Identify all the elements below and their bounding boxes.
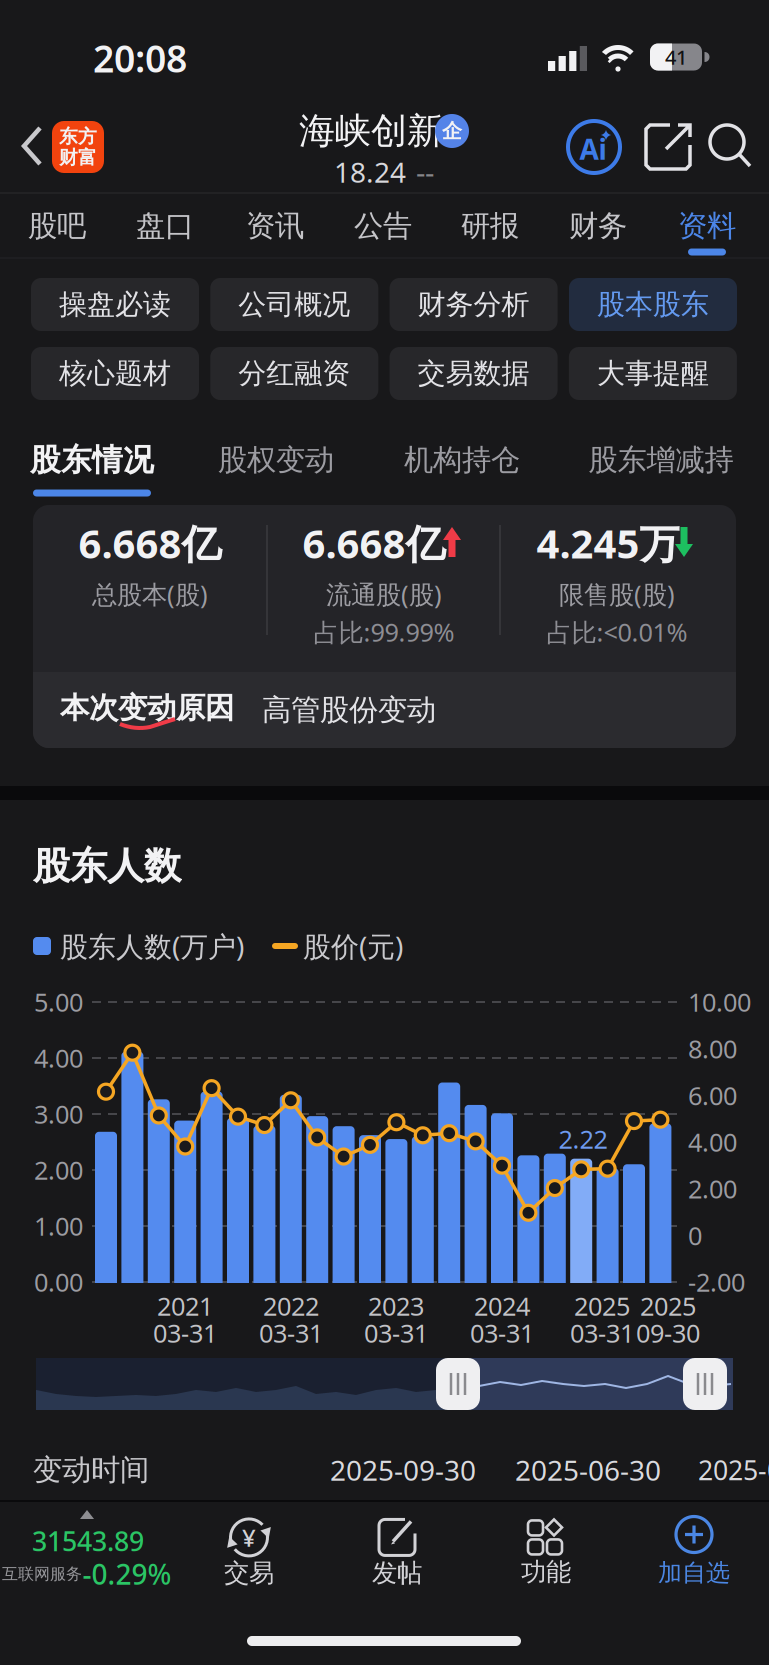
button[interactable]: Ai [568, 121, 620, 173]
staticText: 18.24 [334, 153, 406, 191]
staticText: 核心题材 [59, 356, 171, 391]
staticText: 2.00 [688, 1172, 737, 1205]
staticText: 流通股(股) [326, 577, 442, 611]
staticText: 4.245万 [536, 516, 679, 569]
staticText: 股本股东 [597, 287, 709, 322]
button[interactable]: Slider handle [436, 1358, 480, 1410]
button[interactable]: 盘口 [120, 198, 210, 254]
staticText: 本次变动原因 [60, 690, 234, 726]
staticText: ¥ [242, 1521, 256, 1553]
staticText: 机构持仓 [404, 442, 520, 478]
staticText: 占比:99.99% [313, 615, 454, 649]
button[interactable]: 股东情况 [30, 441, 154, 479]
button[interactable]: 核心题材 [31, 347, 199, 400]
staticText: 资料 [678, 208, 736, 244]
staticText: 股东人数 [33, 843, 181, 889]
staticText: 股价(元) [303, 927, 403, 965]
staticText: 03-31 [259, 1316, 323, 1350]
button[interactable]: 股本股东 [569, 278, 737, 331]
staticText: 财务分析 [418, 287, 530, 322]
staticText: 31543.89 [32, 1523, 144, 1559]
button[interactable]: 分红融资 [210, 347, 378, 400]
staticText: 03-31 [470, 1316, 534, 1350]
staticText: 股东情况 [30, 441, 154, 479]
staticText: 0 [688, 1218, 702, 1252]
staticText: 20:08 [93, 33, 187, 83]
staticText: 交易 [224, 1557, 274, 1588]
staticText: 2.22 [558, 1122, 607, 1156]
button[interactable]: Share [644, 123, 692, 171]
button[interactable]: 公告 [338, 198, 428, 254]
staticText: 互联网服务 [2, 1564, 82, 1584]
staticText: 盘口 [136, 208, 194, 244]
button[interactable]: 加自选 [629, 1516, 759, 1587]
button[interactable]: Slider handle [683, 1358, 727, 1410]
staticText: 股吧 [28, 208, 86, 244]
button[interactable]: 财务 [553, 198, 643, 254]
staticText: 2022 [263, 1289, 319, 1323]
staticText: 变动时间 [33, 1452, 149, 1488]
button[interactable]: 大事提醒 [569, 347, 737, 400]
button[interactable]: 操盘必读 [31, 278, 199, 331]
staticText: 2025-06-30 [515, 1451, 661, 1489]
staticText: 海峡创新 [299, 109, 443, 153]
button[interactable]: 资讯 [230, 198, 320, 254]
staticText: 总股本(股) [92, 577, 208, 611]
staticText: 2025-0 [698, 1452, 769, 1488]
staticText: 财富 [59, 146, 97, 169]
staticText: 限售股(股) [559, 577, 675, 611]
button[interactable]: 研报 [445, 198, 535, 254]
button[interactable]: 股吧 [12, 198, 102, 254]
staticText: 6.00 [688, 1078, 737, 1112]
button[interactable]: 财务分析 [390, 278, 558, 331]
staticText: 资讯 [246, 208, 304, 244]
staticText: 财务 [569, 208, 627, 244]
button[interactable]: Back [22, 126, 44, 168]
button[interactable]: 31543.89 [0, 1496, 200, 1596]
staticText: 操盘必读 [59, 287, 171, 322]
staticText: 2024 [474, 1289, 530, 1323]
button[interactable]: 公司概况 [210, 278, 378, 331]
staticText: 高管股份变动 [262, 692, 436, 728]
staticText: 2021 [157, 1289, 213, 1323]
staticText: 公告 [354, 208, 412, 244]
staticText: 股东增减持 [588, 442, 733, 478]
staticText: 03-31 [364, 1316, 428, 1350]
staticText: 4.00 [688, 1125, 737, 1159]
staticText: 4.00 [34, 1041, 83, 1075]
button[interactable]: 交易数据 [390, 347, 558, 400]
staticText: 股东人数(万户) [60, 927, 244, 965]
staticText: 0.00 [34, 1265, 83, 1299]
staticText: 2023 [368, 1289, 424, 1323]
staticText: 大事提醒 [597, 356, 709, 391]
staticText: 2025 [574, 1289, 630, 1323]
button[interactable]: 资料 [662, 198, 752, 254]
staticText: 09-30 [636, 1316, 700, 1350]
staticText: 3.00 [34, 1097, 83, 1131]
button[interactable]: 股权变动 [218, 442, 334, 478]
staticText: 10.00 [688, 985, 751, 1019]
button[interactable]: 功能 [486, 1518, 606, 1587]
button[interactable]: 东方财富 [52, 121, 104, 173]
staticText: 占比:<0.01% [546, 615, 687, 649]
staticText: 公司概况 [238, 287, 350, 322]
staticText: 加自选 [658, 1558, 730, 1587]
staticText: 8.00 [688, 1032, 737, 1065]
staticText: 股权变动 [218, 442, 334, 478]
staticText: 03-31 [153, 1316, 217, 1350]
staticText: 交易数据 [418, 356, 530, 391]
staticText: 企 [442, 119, 462, 143]
staticText: 2025 [640, 1289, 696, 1323]
button[interactable]: 发帖 [337, 1517, 457, 1588]
button[interactable]: ¥ [189, 1517, 309, 1588]
staticText: 6.668亿 [78, 516, 221, 569]
button[interactable]: 机构持仓 [404, 442, 520, 478]
staticText: 03-31 [570, 1316, 634, 1350]
staticText: 2025-09-30 [330, 1451, 476, 1489]
staticText: 6.668亿 [302, 516, 445, 569]
button[interactable]: Search [709, 124, 753, 168]
button[interactable]: 股东增减持 [588, 442, 733, 478]
staticText: 发帖 [372, 1557, 422, 1588]
staticText: -0.29% [82, 1555, 171, 1593]
staticText: 分红融资 [238, 356, 350, 391]
